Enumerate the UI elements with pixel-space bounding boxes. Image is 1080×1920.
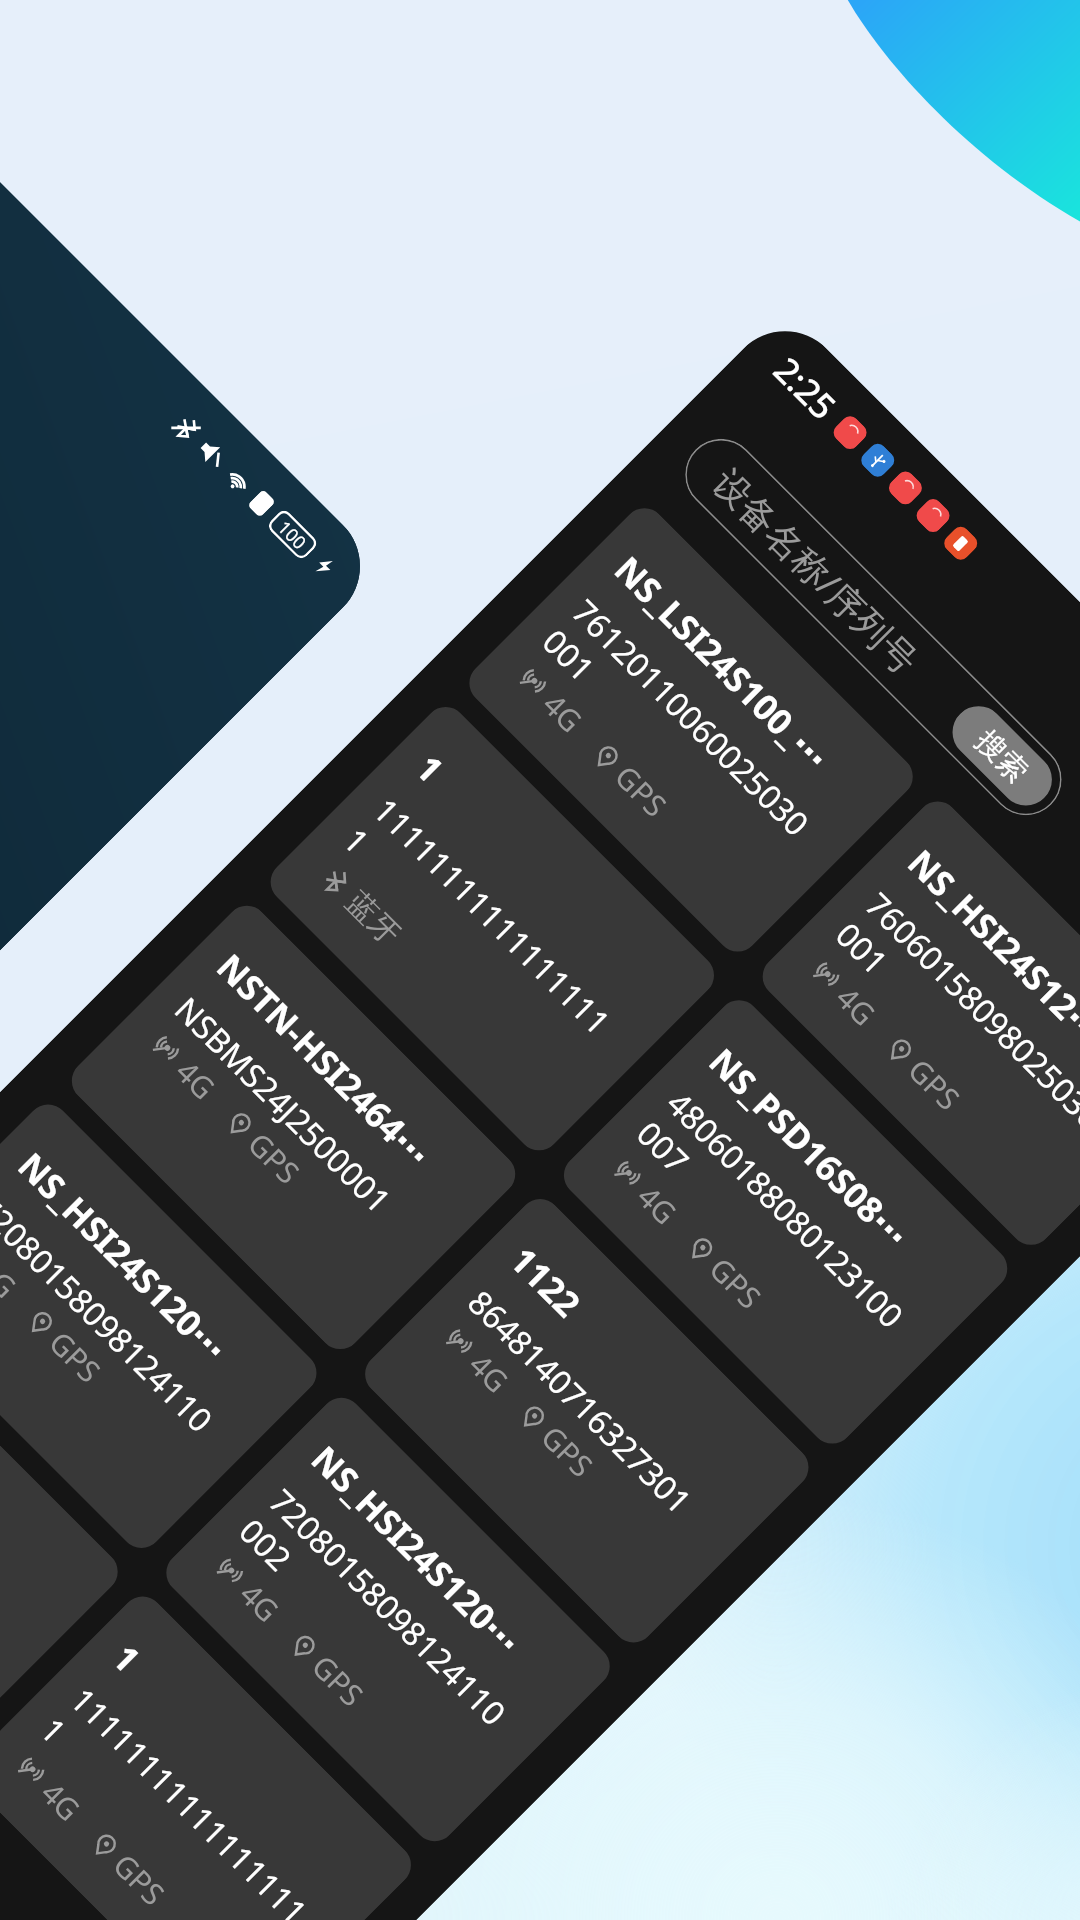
staticText: 4G xyxy=(232,1573,289,1630)
staticText: 100 xyxy=(273,515,312,554)
staticText: 111111111111111111 xyxy=(31,1678,324,1920)
button[interactable]: 1122 xyxy=(356,1190,817,1651)
staticText: 1122 xyxy=(500,1236,591,1327)
staticText: 蓝牙 xyxy=(338,883,408,953)
staticText: NSBMS24J2500001 xyxy=(166,987,401,1222)
button[interactable]: 搜索 xyxy=(942,695,1063,816)
button[interactable]: 1 xyxy=(262,698,723,1159)
staticText: 76120110060025030001 xyxy=(533,589,826,882)
staticText: GPS xyxy=(607,756,676,825)
staticText: GPS xyxy=(240,1123,309,1192)
staticText: GPS xyxy=(701,1248,771,1317)
staticText: 1 xyxy=(103,1634,151,1682)
staticText: 设备名称/序列号 xyxy=(703,457,930,684)
button[interactable]: NS_HSI24S12⋯ xyxy=(754,793,1080,1254)
button[interactable]: 20⋯ xyxy=(0,1294,126,1755)
staticText: 2:25 xyxy=(764,346,847,430)
button[interactable]: NS_HSI24S120⋯ xyxy=(158,1389,618,1850)
staticText: GPS xyxy=(533,1416,602,1485)
staticText: 4G xyxy=(535,684,592,741)
staticText: 4G xyxy=(828,977,885,1034)
staticText: NSTN-HSI2464⋯ xyxy=(207,943,441,1177)
staticText: 4G xyxy=(33,1772,90,1829)
staticText: NS_HSI24S120⋯ xyxy=(302,1435,531,1665)
staticText: NS_HSI24S120⋯ xyxy=(8,1142,238,1372)
staticText: 1 xyxy=(406,744,454,793)
staticText: NS_LSI24S100_⋯ xyxy=(605,545,840,781)
staticText: 111111111111111111 xyxy=(334,788,627,1081)
staticText: GPS xyxy=(105,1844,174,1913)
button[interactable]: NS_PSD16S08⋯ xyxy=(555,991,1016,1452)
staticText: GPS xyxy=(304,1645,373,1714)
staticText: 48060188080123100007 xyxy=(628,1081,920,1374)
button[interactable]: 设备名称/序列号 xyxy=(670,424,1076,830)
staticText: 8648140716327301 xyxy=(459,1280,702,1523)
staticText: 76060158098025030001 xyxy=(826,883,1080,1175)
staticText: NS_PSD16S08⋯ xyxy=(699,1038,920,1258)
button[interactable]: NS_LSI24S100_⋯ xyxy=(461,499,921,960)
staticText: GPS xyxy=(41,1322,110,1391)
staticText: GPS xyxy=(900,1049,969,1118)
staticText: 4G xyxy=(0,1250,26,1307)
button[interactable]: 1 xyxy=(0,1588,420,1920)
button[interactable]: NSTN-HSI2464⋯ xyxy=(63,897,524,1358)
staticText: 搜索 xyxy=(968,722,1036,790)
staticText: 72080158098124110002 xyxy=(230,1479,523,1772)
button[interactable]: NS_HSI24S120⋯ xyxy=(0,1096,325,1557)
staticText: 4G xyxy=(629,1176,686,1233)
staticText: 4G xyxy=(168,1051,225,1108)
staticText: 72080158098124110 xyxy=(0,1186,223,1441)
staticText: 4G xyxy=(461,1344,518,1401)
staticText: NS_HSI24S12⋯ xyxy=(898,839,1080,1054)
